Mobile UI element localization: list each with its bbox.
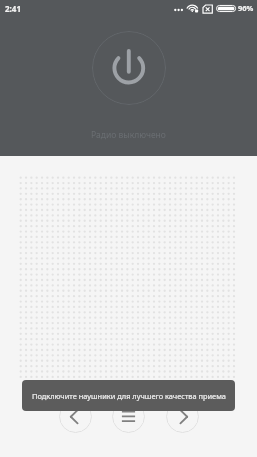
button[interactable]: Previous <box>59 400 92 433</box>
staticText: 2:41 <box>5 3 21 14</box>
button[interactable]: Station list <box>112 400 145 433</box>
button[interactable]: Next <box>166 400 199 433</box>
staticText: Подключите наушники для лучшего качества… <box>32 391 226 401</box>
other: No SIM card <box>203 5 212 13</box>
staticText: Радио выключено <box>91 129 166 141</box>
button[interactable]: Power <box>92 31 166 105</box>
other: Wi-Fi <box>187 4 199 12</box>
staticText: 96% <box>238 3 254 13</box>
other: More <box>174 8 183 12</box>
